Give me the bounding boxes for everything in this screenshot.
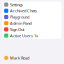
staticText: Sign Out (10, 27, 24, 32)
button[interactable]: Settings (2, 1, 61, 8)
staticText: Archived Chats (10, 8, 37, 13)
staticText: Settings (10, 2, 23, 7)
button[interactable]: Mark Read (2, 55, 61, 61)
button[interactable]: Sign Out (2, 26, 61, 32)
staticText: Active Users 1x (10, 33, 38, 38)
staticText: Playground (10, 14, 29, 20)
button[interactable]: Archived Chats (2, 8, 61, 14)
button[interactable]: Active Users 1x (2, 32, 61, 39)
staticText: Mark Read (10, 55, 29, 60)
staticText: Admin Panel (10, 20, 32, 26)
button[interactable]: Playground (2, 14, 61, 20)
button[interactable]: Admin Panel (2, 20, 61, 26)
